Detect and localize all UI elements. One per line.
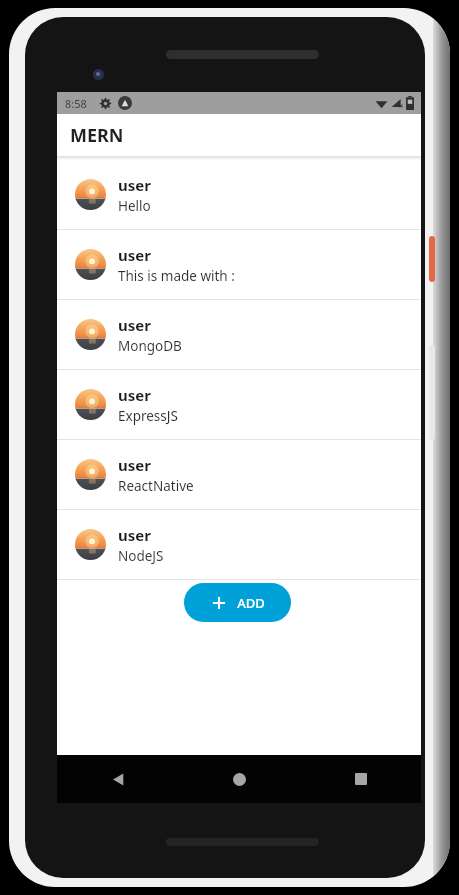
button[interactable]: user <box>57 440 421 510</box>
staticText: MongoDB <box>118 337 182 355</box>
staticText: user <box>118 525 151 545</box>
staticText: user <box>118 245 151 265</box>
staticText: user <box>118 385 151 405</box>
staticText: user <box>118 455 151 475</box>
staticText: ADD <box>237 594 265 612</box>
button[interactable]: user <box>57 300 421 370</box>
button[interactable]: Recent apps <box>300 755 421 803</box>
button[interactable]: user <box>57 510 421 580</box>
button[interactable]: user <box>57 370 421 440</box>
staticText: Hello <box>118 197 151 215</box>
staticText: ReactNative <box>118 477 194 495</box>
staticText: NodeJS <box>118 547 164 565</box>
button[interactable]: Back <box>57 755 179 803</box>
staticText: 8:58 <box>65 96 87 111</box>
button[interactable]: Home <box>179 755 300 803</box>
staticText: MERN <box>70 123 124 148</box>
button[interactable]: user <box>57 160 421 230</box>
staticText: This is made with : <box>118 267 235 285</box>
button[interactable]: user <box>57 230 421 300</box>
button[interactable]: ADD <box>184 583 291 622</box>
staticText: ExpressJS <box>118 407 178 425</box>
staticText: user <box>118 175 151 195</box>
staticText: user <box>118 315 151 335</box>
